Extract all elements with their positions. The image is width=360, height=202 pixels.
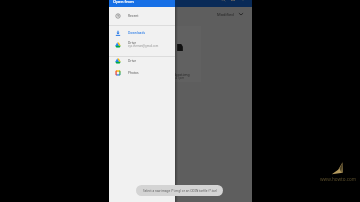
staticText: Open from xyxy=(113,0,134,4)
staticText: Drive xyxy=(128,41,137,45)
staticText: Modified xyxy=(217,12,234,17)
button[interactable]: More options xyxy=(240,0,246,2)
staticText: Recent xyxy=(128,14,139,18)
button[interactable]: Recent xyxy=(109,10,175,22)
button[interactable]: Grid view xyxy=(230,0,236,2)
staticText: Select a raw image (*.img) or an ODIN ta… xyxy=(143,189,217,193)
button[interactable]: sm-g930f-boot.img xyxy=(157,26,201,82)
button[interactable]: Downloads xyxy=(109,27,175,39)
button[interactable]: Drive xyxy=(109,55,175,67)
staticText: xyz.theman@gmail.com xyxy=(128,44,159,48)
button[interactable]: Modified xyxy=(217,11,244,17)
button[interactable]: Photos xyxy=(109,67,175,79)
staticText: www.howto.com xyxy=(320,176,356,182)
staticText: 21.5 MB, 12:41 pm xyxy=(159,76,185,80)
button[interactable]: Drive xyxy=(109,38,175,51)
staticText: Photos xyxy=(128,71,139,75)
button[interactable]: Select a raw image (*.img) or an ODIN ta… xyxy=(136,185,223,196)
staticText: Drive xyxy=(128,59,137,63)
staticText: sm-g930f-boot.img xyxy=(159,72,190,77)
button[interactable]: Search xyxy=(220,0,226,2)
staticText: Downloads xyxy=(128,31,145,35)
